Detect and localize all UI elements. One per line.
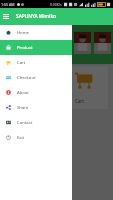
- button[interactable]: Checkout: [0, 70, 72, 85]
- staticText: Product: [17, 45, 33, 51]
- button[interactable]: Exit: [0, 130, 72, 145]
- button[interactable]: Open navigation drawer: [0, 8, 12, 25]
- button[interactable]: Home: [0, 25, 72, 40]
- staticText: 1:55 AM: [1, 2, 15, 7]
- button[interactable]: Product: [0, 40, 72, 55]
- staticText: About: [17, 90, 29, 96]
- button[interactable]: Contact: [0, 115, 72, 130]
- staticText: Cart: [17, 60, 26, 66]
- staticText: Share: [17, 105, 29, 111]
- button[interactable]: Cart: [33, 66, 69, 109]
- button[interactable]: About: [0, 85, 72, 100]
- staticText: Contact: [17, 120, 33, 126]
- staticText: Home: [17, 30, 29, 36]
- staticText: 0.00K/s: [50, 2, 62, 7]
- staticText: Exit: [17, 135, 25, 141]
- staticText: SAPUNYA Mimiko: [16, 13, 57, 20]
- staticText: Checkout: [17, 75, 36, 81]
- button[interactable]: Cart: [0, 55, 72, 70]
- button[interactable]: Share: [0, 100, 72, 115]
- button[interactable]: Cart: [72, 66, 108, 109]
- staticText: Cart: [75, 98, 84, 104]
